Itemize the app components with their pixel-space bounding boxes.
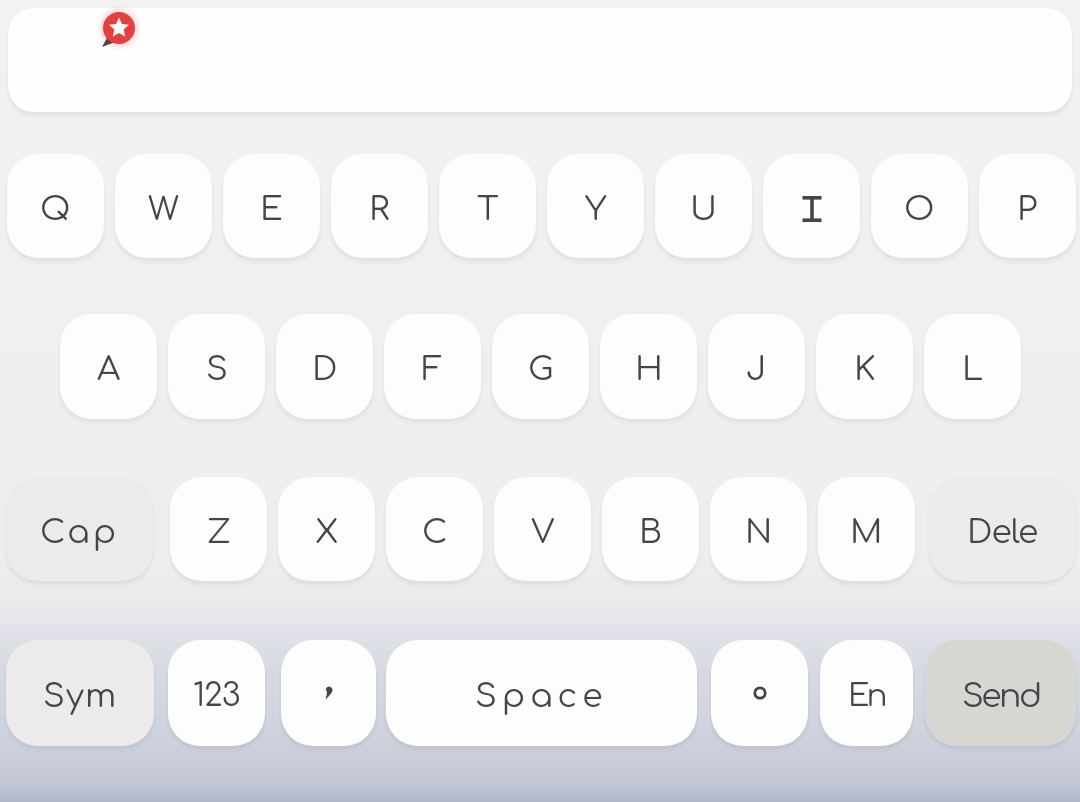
staticText: En (848, 679, 885, 714)
button[interactable]: L (924, 314, 1021, 419)
button[interactable]: W (115, 154, 212, 258)
button[interactable]: G (492, 314, 589, 419)
staticText: Sym (43, 678, 118, 715)
staticText: D (312, 351, 338, 388)
staticText: S (206, 351, 228, 388)
button[interactable]: D (276, 314, 373, 419)
button[interactable]: O (871, 154, 968, 258)
button[interactable]: B (602, 477, 699, 581)
button[interactable]: V (494, 477, 591, 581)
button[interactable]: Y (547, 154, 644, 258)
staticText: Z (207, 514, 231, 551)
button[interactable]: M (818, 477, 915, 581)
button[interactable]: Send (925, 640, 1076, 746)
button[interactable]: S (168, 314, 265, 419)
button[interactable]: A (60, 314, 157, 419)
staticText: W (148, 191, 179, 228)
button[interactable]: En (820, 640, 913, 746)
staticText: Q (40, 191, 71, 228)
button[interactable]: 123 (168, 640, 265, 746)
staticText: Y (585, 191, 607, 228)
button[interactable]: T (439, 154, 536, 258)
staticText: O (904, 191, 935, 228)
staticText: 123 (193, 678, 240, 714)
button[interactable]: U (655, 154, 752, 258)
staticText: F (422, 351, 443, 388)
button[interactable] (763, 154, 860, 258)
button[interactable]: Sym (6, 640, 154, 746)
staticText: C (422, 514, 448, 551)
button[interactable]: Space (386, 640, 697, 746)
staticText: V (531, 514, 555, 551)
button[interactable]: Z (170, 477, 267, 581)
staticText: A (97, 351, 121, 388)
staticText: M (850, 514, 883, 551)
button[interactable] (8, 8, 1072, 112)
button[interactable]: Q (7, 154, 104, 258)
staticText: B (639, 514, 662, 551)
staticText: E (260, 191, 283, 228)
staticText: H (635, 351, 663, 388)
button[interactable]: E (223, 154, 320, 258)
staticText: N (745, 514, 773, 551)
staticText: U (690, 191, 718, 228)
button[interactable]: Dele (929, 477, 1076, 581)
button[interactable]: H (600, 314, 697, 419)
button[interactable]: J (708, 314, 805, 419)
button[interactable]: Cap (6, 477, 153, 581)
staticText: Space (475, 678, 608, 715)
button[interactable]: N (710, 477, 807, 581)
staticText: G (528, 351, 554, 388)
staticText: T (477, 191, 499, 228)
button[interactable]: R (331, 154, 428, 258)
button[interactable]: X (278, 477, 375, 581)
button[interactable]: P (979, 154, 1076, 258)
staticText: Send (962, 678, 1040, 715)
staticText: J (746, 351, 767, 388)
button[interactable]: K (816, 314, 913, 419)
staticText: X (315, 514, 339, 551)
button[interactable] (711, 640, 808, 746)
staticText: L (962, 351, 983, 388)
staticText: K (854, 351, 876, 388)
button[interactable]: F (384, 314, 481, 419)
staticText: P (1017, 191, 1038, 228)
button[interactable] (281, 640, 376, 746)
staticText: R (369, 191, 390, 228)
button[interactable]: C (386, 477, 483, 581)
staticText: Dele (967, 514, 1038, 551)
staticText: Cap (40, 514, 120, 551)
